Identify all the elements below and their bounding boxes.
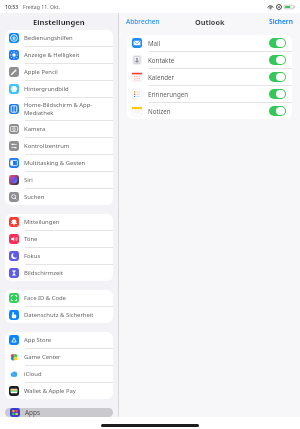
button[interactable]: Home-Bildschirm & App- <box>5 98 113 120</box>
staticText: Abbrechen <box>126 17 160 26</box>
staticText: Game Center <box>24 353 61 361</box>
button[interactable]: Wallet & Apple Pay <box>5 383 113 399</box>
staticText: Siri <box>24 176 33 184</box>
button[interactable]: iCloud <box>5 366 113 382</box>
button[interactable]: Apple Pencil <box>5 64 113 80</box>
button[interactable]: Sichern <box>262 15 300 28</box>
staticText: Notizen <box>148 107 269 115</box>
staticText: Mitteilungen <box>24 218 60 226</box>
staticText: Apple Pencil <box>24 68 58 76</box>
button[interactable]: Kalender <box>127 69 292 85</box>
button[interactable]: Mail <box>127 35 292 51</box>
button[interactable]: Ein/Aus <box>269 72 286 82</box>
button[interactable]: Multitasking & Gesten <box>5 155 113 171</box>
button[interactable]: Ein/Aus <box>269 89 286 99</box>
staticText: Suchen <box>24 193 45 201</box>
staticText: App Store <box>24 336 52 344</box>
staticText: iCloud <box>24 370 42 378</box>
button[interactable]: Kontakte <box>127 52 292 68</box>
button[interactable]: Game Center <box>5 349 113 365</box>
staticText: Multitasking & Gesten <box>24 159 86 167</box>
button[interactable]: Ein/Aus <box>269 55 286 65</box>
staticText: Sichern <box>269 17 293 26</box>
staticText: Hintergrundbild <box>24 85 69 93</box>
button[interactable]: Töne <box>5 231 113 247</box>
button[interactable]: Anzeige & Helligkeit <box>5 47 113 63</box>
button[interactable]: Suchen <box>5 189 113 205</box>
staticText: Freitag 11. Okt. <box>23 3 61 10</box>
staticText: Kalender <box>148 73 269 81</box>
staticText: Kontakte <box>148 56 269 64</box>
staticText: Apps <box>25 408 41 417</box>
button[interactable]: Abbrechen <box>119 15 167 28</box>
staticText: 10:53 <box>5 3 19 10</box>
staticText: Erinnerungen <box>148 90 269 98</box>
button[interactable]: Mitteilungen <box>5 214 113 230</box>
staticText: Bildschirmzeit <box>24 269 63 277</box>
staticText: Outlook <box>195 17 225 27</box>
button[interactable]: Erinnerungen <box>127 86 292 102</box>
button[interactable]: Kontrollzentrum <box>5 138 113 154</box>
button[interactable]: Datenschutz & Sicherheit <box>5 307 113 323</box>
staticText: Face ID & Code <box>24 294 66 302</box>
button[interactable]: Hintergrundbild <box>5 81 113 97</box>
staticText: Mediathek <box>24 109 54 117</box>
button[interactable]: Fokus <box>5 248 113 264</box>
staticText: Kamera <box>24 125 46 133</box>
staticText: Fokus <box>24 252 41 260</box>
button[interactable]: Siri <box>5 172 113 188</box>
button[interactable]: Kamera <box>5 121 113 137</box>
staticText: Wallet & Apple Pay <box>24 387 76 395</box>
button[interactable]: Bedienungshilfen <box>5 30 113 46</box>
staticText: Anzeige & Helligkeit <box>24 51 80 59</box>
staticText: Einstellungen <box>33 17 85 27</box>
staticText: Datenschutz & Sicherheit <box>24 311 94 319</box>
button[interactable]: Ein/Aus <box>269 106 286 116</box>
staticText: Kontrollzentrum <box>24 142 70 150</box>
staticText: Bedienungshilfen <box>24 34 73 42</box>
staticText: Töne <box>24 235 38 243</box>
button[interactable]: Notizen <box>127 103 292 119</box>
staticText: Home-Bildschirm & App- <box>24 101 93 109</box>
button[interactable]: App Store <box>5 332 113 348</box>
button[interactable]: Apps <box>5 408 113 417</box>
button[interactable]: Ein/Aus <box>269 38 286 48</box>
button[interactable]: Bildschirmzeit <box>5 265 113 281</box>
staticText: Mail <box>148 39 269 47</box>
button[interactable]: Face ID & Code <box>5 290 113 306</box>
